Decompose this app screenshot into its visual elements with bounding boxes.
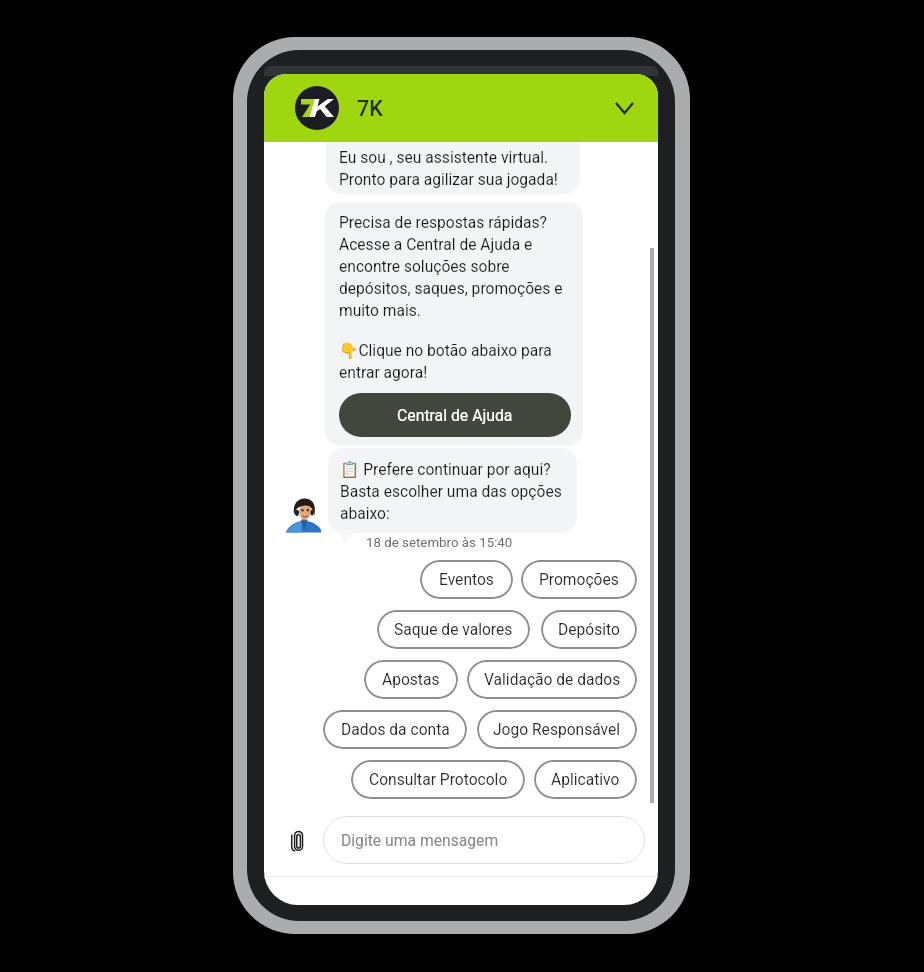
- staticText: 7K: [357, 96, 383, 121]
- button[interactable]: Central de Ajuda: [339, 393, 571, 437]
- staticText: Consultar Protocolo: [369, 771, 508, 789]
- button[interactable]: Jogo Responsável: [477, 710, 637, 749]
- button[interactable]: Saque de valores: [377, 610, 530, 649]
- staticText: Jogo Responsável: [493, 721, 621, 739]
- staticText: Eventos: [439, 571, 494, 589]
- staticText: 📋 Prefere continuar por aqui? Basta esco…: [340, 461, 567, 523]
- staticText: Depósito: [558, 621, 620, 639]
- button[interactable]: Apostas: [364, 660, 458, 699]
- staticText: Apostas: [382, 671, 440, 689]
- staticText: Digite uma mensagem: [341, 831, 499, 849]
- staticText: Validação de dados: [484, 671, 621, 689]
- button[interactable]: Eventos: [420, 560, 513, 599]
- button[interactable]: Depósito: [541, 610, 637, 649]
- staticText: Precisa de respostas rápidas? Acesse a C…: [339, 214, 571, 320]
- staticText: Aplicativo: [551, 771, 620, 789]
- button[interactable]: Aplicativo: [534, 760, 637, 799]
- staticText: 18 de setembro às 15:40: [366, 535, 513, 551]
- staticText: Promoções: [539, 571, 619, 589]
- button[interactable]: Dados da conta: [323, 710, 467, 749]
- button[interactable]: Consultar Protocolo: [351, 760, 525, 799]
- button[interactable]: Promoções: [521, 560, 637, 599]
- staticText: Saque de valores: [394, 621, 513, 639]
- staticText: Dados da conta: [341, 721, 450, 739]
- staticText: Eu sou , seu assistente virtual. Pronto …: [339, 149, 558, 189]
- button[interactable]: Attach file: [282, 825, 312, 855]
- button[interactable]: Collapse chat: [606, 90, 642, 126]
- button[interactable]: Digite uma mensagem: [323, 816, 645, 864]
- button[interactable]: Validação de dados: [467, 660, 637, 699]
- staticText: 👇Clique no botão abaixo para entrar agor…: [339, 342, 571, 382]
- staticText: Central de Ajuda: [397, 406, 513, 425]
